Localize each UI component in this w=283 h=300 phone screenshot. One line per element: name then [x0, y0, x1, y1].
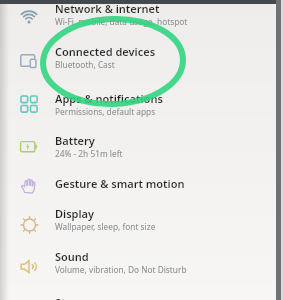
staticText: Permissions, default apps — [55, 106, 156, 117]
button[interactable]: Battery — [0, 126, 283, 166]
button[interactable]: Storage — [0, 288, 283, 300]
staticText: Storage — [55, 295, 97, 300]
staticText: 24% - 2h 51m left — [55, 148, 123, 159]
staticText: Volume, vibration, Do Not Disturb — [55, 264, 187, 275]
button[interactable]: Network & internet — [0, 0, 283, 34]
staticText: Network & internet — [55, 1, 160, 16]
staticText: Wi-Fi, mobile, data usage, hotspot — [55, 16, 188, 27]
staticText: Battery — [55, 133, 95, 148]
staticText: Apps & notifications — [55, 91, 163, 106]
button[interactable]: Display — [0, 199, 283, 239]
staticText: Sound — [55, 249, 89, 264]
staticText: Connected devices — [55, 44, 156, 59]
staticText: Wallpaper, sleep, font size — [55, 221, 156, 232]
button[interactable]: Apps & notifications — [0, 84, 283, 124]
staticText: Bluetooth, Cast — [55, 59, 115, 70]
button[interactable]: Connected devices — [0, 37, 283, 77]
button[interactable]: Gesture & smart motion — [0, 169, 283, 209]
button[interactable]: Sound — [0, 242, 283, 282]
staticText: Gesture & smart motion — [55, 176, 185, 191]
staticText: Display — [55, 206, 95, 221]
